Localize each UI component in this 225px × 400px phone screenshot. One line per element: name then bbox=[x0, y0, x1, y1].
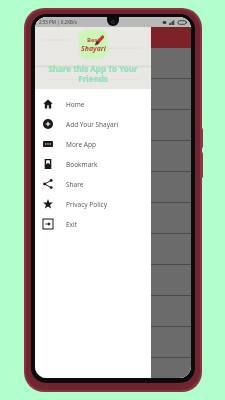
button[interactable]: Bookmark bbox=[35, 154, 151, 174]
staticText: Add Your Shayari bbox=[66, 120, 119, 129]
staticText: Best bbox=[87, 36, 101, 44]
staticText: Shayari bbox=[81, 44, 106, 54]
button[interactable]: Home bbox=[35, 94, 151, 114]
button[interactable] bbox=[35, 172, 191, 202]
button[interactable] bbox=[35, 48, 191, 78]
staticText: Exit bbox=[66, 220, 78, 229]
staticText: More App bbox=[66, 140, 96, 149]
button[interactable] bbox=[35, 265, 191, 295]
button[interactable]: More App bbox=[35, 134, 151, 154]
staticText: Home bbox=[66, 100, 85, 109]
button[interactable] bbox=[35, 110, 191, 140]
button[interactable] bbox=[35, 234, 191, 264]
button[interactable]: Privacy Policy bbox=[35, 194, 151, 214]
button[interactable]: Add Your Shayari bbox=[35, 114, 151, 134]
staticText: Share bbox=[66, 180, 84, 189]
button[interactable]: Exit bbox=[35, 214, 151, 234]
button[interactable]: Share bbox=[35, 174, 151, 194]
staticText: Share this App To Your Friends bbox=[35, 63, 151, 84]
button[interactable] bbox=[35, 141, 191, 171]
button[interactable] bbox=[35, 79, 191, 109]
staticText: Bookmark bbox=[66, 160, 98, 169]
staticText: Privacy Policy bbox=[66, 200, 108, 209]
staticText: 2:53 PM | 0.2KB/s bbox=[39, 19, 77, 25]
button[interactable] bbox=[35, 358, 191, 378]
button[interactable] bbox=[35, 296, 191, 326]
button[interactable] bbox=[35, 327, 191, 357]
button[interactable] bbox=[35, 203, 191, 233]
